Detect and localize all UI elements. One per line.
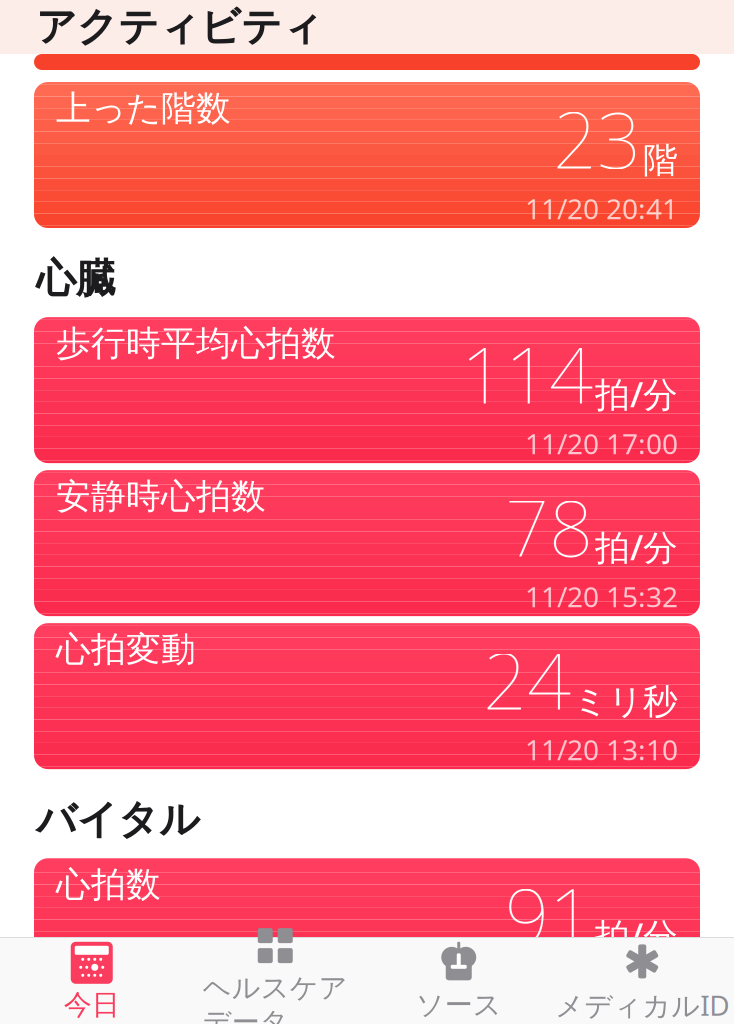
button[interactable]: 心拍変動 xyxy=(34,623,700,769)
staticText: 91 xyxy=(505,863,593,966)
staticText: 23 xyxy=(553,87,641,190)
staticText: 11/20 13:10 xyxy=(525,731,678,768)
staticText: 11/20 15:32 xyxy=(525,578,678,615)
staticText: 歩行時平均心拍数 xyxy=(56,322,336,365)
staticText: 心拍変動 xyxy=(56,628,196,671)
staticText: バイタル xyxy=(36,795,200,844)
staticText: 24 xyxy=(483,628,571,731)
staticText: 心臓 xyxy=(36,254,116,303)
staticText: 今日 xyxy=(64,988,120,1022)
staticText: 78 xyxy=(505,475,593,578)
staticText: 拍/分 xyxy=(595,371,678,417)
staticText: 11/20 17:00 xyxy=(525,425,678,462)
staticText: ソース xyxy=(416,988,502,1022)
staticText: 114 xyxy=(461,322,593,425)
button[interactable] xyxy=(34,54,700,70)
staticText: 階 xyxy=(643,139,678,182)
staticText: 上った階数 xyxy=(56,87,231,130)
staticText: 11/20 23:16 xyxy=(525,966,678,1003)
staticText: 安静時心拍数 xyxy=(56,475,266,518)
staticText: 心拍数 xyxy=(56,863,161,906)
button[interactable]: 上った階数 xyxy=(34,82,700,228)
button[interactable]: ソース xyxy=(367,936,550,1024)
button[interactable]: ヘルスケアデータ xyxy=(183,919,367,1024)
staticText: ヘルスケアデータ xyxy=(203,971,348,1024)
staticText: 11/20 20:41 xyxy=(525,190,678,227)
staticText: 拍/分 xyxy=(595,912,678,958)
staticText: アクティビティ xyxy=(36,2,323,51)
staticText: 拍/分 xyxy=(595,524,678,570)
button[interactable]: 安静時心拍数 xyxy=(34,470,700,616)
button[interactable]: 歩行時平均心拍数 xyxy=(34,317,700,463)
button[interactable]: 心拍数 xyxy=(34,858,700,1004)
button[interactable]: 今日 xyxy=(0,936,183,1024)
staticText: ミリ秒 xyxy=(573,680,678,723)
staticText: メディカルID xyxy=(555,986,729,1024)
button[interactable]: メディカルID xyxy=(550,934,734,1024)
